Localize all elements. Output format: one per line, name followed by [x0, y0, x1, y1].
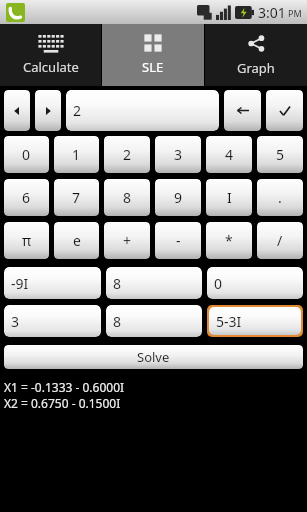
button[interactable]: 8 — [106, 305, 202, 337]
button[interactable]: 8 — [104, 179, 150, 216]
button[interactable]: . — [257, 179, 303, 216]
button[interactable]: 6 — [4, 179, 49, 216]
staticText: - — [176, 231, 181, 250]
staticText: / — [277, 231, 283, 250]
button[interactable]: / — [257, 222, 303, 259]
staticText: X2 = 0.6750 - 0.1500I — [4, 395, 121, 411]
staticText: Solve — [137, 348, 170, 366]
staticText: 0 — [22, 145, 31, 164]
button[interactable]: Graph — [205, 24, 307, 86]
staticText: 0 — [214, 274, 223, 293]
button[interactable]: 8 — [106, 267, 202, 299]
staticText: 6 — [22, 188, 31, 207]
button[interactable]: Calculate — [0, 24, 101, 86]
staticText: + — [123, 231, 132, 250]
button[interactable]: -9I — [4, 267, 101, 299]
button[interactable]: π — [4, 222, 49, 259]
button[interactable]: 4 — [206, 136, 252, 173]
staticText: 1 — [72, 145, 81, 164]
button[interactable]: Solve — [4, 345, 303, 369]
button[interactable]: Backspace — [224, 90, 261, 131]
staticText: e — [73, 231, 81, 250]
staticText: * — [225, 231, 233, 250]
staticText: 8 — [113, 274, 122, 293]
button[interactable]: Previous field — [4, 90, 30, 131]
button[interactable]: 0 — [207, 267, 303, 299]
button[interactable]: Confirm — [266, 90, 303, 131]
staticText: 2 — [73, 101, 82, 120]
staticText: . — [278, 188, 282, 207]
staticText: π — [22, 231, 32, 250]
button[interactable]: 5 — [257, 136, 303, 173]
staticText: 4 — [225, 145, 234, 164]
staticText: 3 — [174, 145, 183, 164]
button[interactable]: - — [155, 222, 201, 259]
staticText: I — [227, 188, 232, 207]
button[interactable]: I — [206, 179, 252, 216]
button[interactable]: 2 — [104, 136, 150, 173]
button[interactable]: 0 — [4, 136, 49, 173]
staticText: 3 — [11, 312, 20, 331]
staticText: 8 — [123, 188, 132, 207]
staticText: SLE — [142, 58, 164, 76]
button[interactable]: e — [54, 222, 99, 259]
button[interactable]: SLE — [102, 24, 204, 86]
staticText: 5 — [276, 145, 285, 164]
button[interactable]: 7 — [54, 179, 99, 216]
button[interactable]: 3 — [4, 305, 101, 337]
staticText: X1 = -0.1333 - 0.6000I — [4, 379, 125, 395]
button[interactable]: 2 — [66, 90, 219, 131]
button[interactable]: 9 — [155, 179, 201, 216]
staticText: 9 — [174, 188, 183, 207]
staticText: 8 — [113, 312, 122, 331]
staticText: 2 — [123, 145, 132, 164]
staticText: 3:01 — [258, 3, 286, 22]
button[interactable]: Next field — [35, 90, 61, 131]
staticText: 5-3I — [216, 312, 242, 331]
staticText: Calculate — [23, 58, 79, 76]
staticText: -9I — [11, 274, 29, 293]
staticText: PM — [288, 7, 302, 19]
button[interactable]: * — [206, 222, 252, 259]
staticText: 7 — [72, 188, 81, 207]
button[interactable]: 5-3I — [209, 307, 301, 335]
button[interactable]: + — [104, 222, 150, 259]
button[interactable]: 3 — [155, 136, 201, 173]
button[interactable]: 1 — [54, 136, 99, 173]
staticText: Graph — [237, 59, 275, 77]
